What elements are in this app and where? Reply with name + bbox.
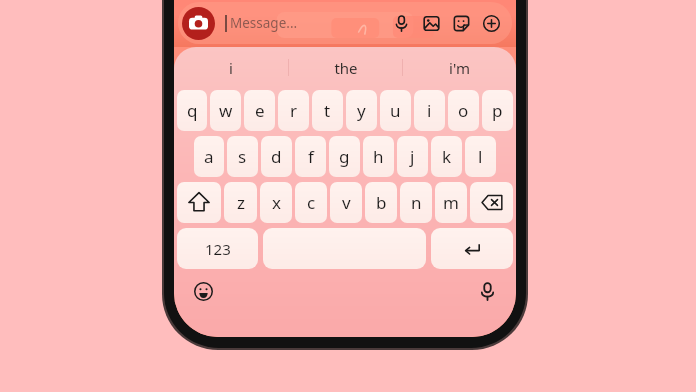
button[interactable]: Voice input xyxy=(472,276,502,306)
button[interactable]: q xyxy=(177,90,207,131)
button[interactable]: l xyxy=(465,136,496,177)
button[interactable]: f xyxy=(295,136,326,177)
button[interactable]: o xyxy=(448,90,479,131)
button[interactable]: m xyxy=(435,182,467,223)
button[interactable]: Enter xyxy=(431,228,513,269)
staticText: z xyxy=(237,191,245,214)
button[interactable]: b xyxy=(365,182,397,223)
button[interactable]: p xyxy=(482,90,513,131)
staticText: x xyxy=(272,191,281,214)
staticText: u xyxy=(390,99,401,122)
button[interactable]: Backspace xyxy=(470,182,513,223)
button[interactable]: x xyxy=(260,182,292,223)
button[interactable]: Send photo xyxy=(416,8,446,38)
staticText: m xyxy=(443,191,459,214)
button[interactable]: r xyxy=(278,90,309,131)
button[interactable]: c xyxy=(295,182,327,223)
staticText: a xyxy=(204,145,214,168)
button[interactable]: y xyxy=(346,90,377,131)
staticText: k xyxy=(442,145,452,168)
button[interactable]: h xyxy=(363,136,394,177)
staticText: j xyxy=(410,145,415,168)
staticText: l xyxy=(478,145,483,168)
button[interactable]: g xyxy=(329,136,360,177)
button[interactable]: i xyxy=(174,47,288,88)
staticText: q xyxy=(187,99,198,122)
button[interactable]: s xyxy=(227,136,258,177)
button[interactable]: Camera xyxy=(182,7,215,40)
staticText: i'm xyxy=(449,58,470,78)
button[interactable]: the xyxy=(289,47,402,88)
staticText: w xyxy=(219,99,233,122)
button[interactable]: u xyxy=(380,90,411,131)
staticText: i xyxy=(229,58,233,78)
staticText: n xyxy=(411,191,422,214)
button[interactable]: a xyxy=(194,136,224,177)
button[interactable]: i'm xyxy=(403,47,516,88)
button[interactable]: More options xyxy=(476,8,506,38)
staticText: f xyxy=(308,145,314,168)
button[interactable]: e xyxy=(244,90,275,131)
button[interactable]: 123 xyxy=(177,228,258,269)
staticText: s xyxy=(238,145,247,168)
button[interactable]: k xyxy=(431,136,462,177)
button[interactable]: Voice message xyxy=(386,8,416,38)
button[interactable]: Emoji xyxy=(188,276,218,306)
button[interactable]: Shift xyxy=(177,182,221,223)
staticText: i xyxy=(427,99,432,122)
staticText: c xyxy=(307,191,316,214)
staticText: y xyxy=(357,99,366,122)
staticText: o xyxy=(458,99,469,122)
staticText: b xyxy=(376,191,387,214)
button[interactable]: j xyxy=(397,136,428,177)
staticText: Message... xyxy=(230,14,298,32)
button[interactable]: n xyxy=(400,182,432,223)
staticText: d xyxy=(271,145,282,168)
button[interactable]: Stickers xyxy=(446,8,476,38)
button[interactable]: t xyxy=(312,90,343,131)
staticText: g xyxy=(339,145,350,168)
staticText: v xyxy=(342,191,351,214)
staticText: t xyxy=(324,99,331,122)
staticText: e xyxy=(255,99,265,122)
button[interactable]: z xyxy=(224,182,257,223)
button[interactable]: Space xyxy=(263,228,426,269)
button[interactable]: v xyxy=(330,182,362,223)
staticText: h xyxy=(373,145,384,168)
staticText: r xyxy=(290,99,298,122)
staticText: 123 xyxy=(205,239,231,259)
button[interactable]: i xyxy=(414,90,445,131)
button[interactable]: Message... xyxy=(225,2,386,44)
staticText: p xyxy=(492,99,503,122)
staticText: the xyxy=(334,58,358,78)
button[interactable]: d xyxy=(261,136,292,177)
button[interactable]: w xyxy=(210,90,241,131)
